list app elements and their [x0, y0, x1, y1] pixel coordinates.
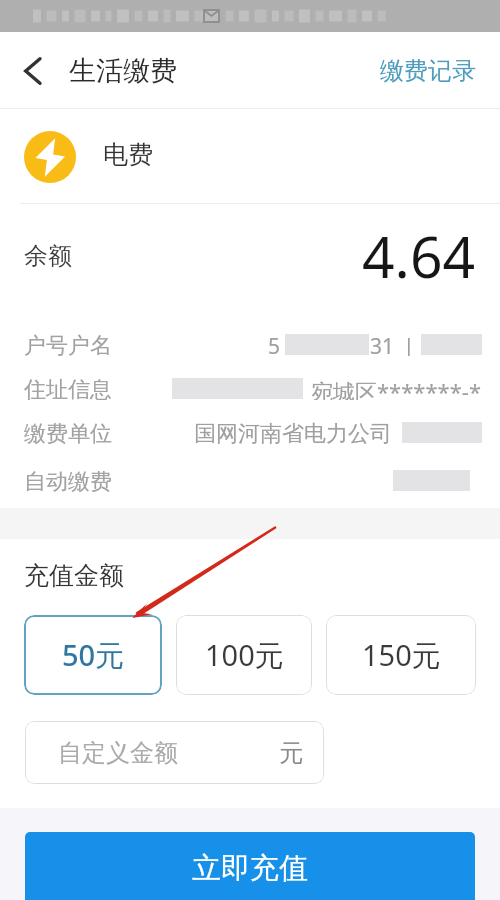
button[interactable]: 100元	[176, 615, 312, 695]
staticText: 生活缴费	[69, 54, 177, 88]
staticText: 立即充值	[192, 850, 308, 887]
staticText: |	[403, 332, 415, 356]
staticText: 4.64	[362, 217, 476, 295]
button[interactable]: 150元	[326, 615, 476, 695]
staticText: 100元	[205, 635, 284, 675]
staticText: 元	[279, 738, 303, 768]
staticText: 宛城区*******-*	[311, 376, 482, 400]
staticText: 自定义金额	[58, 738, 178, 768]
button[interactable]: 立即充值	[25, 832, 475, 900]
staticText: 缴费记录	[380, 56, 476, 86]
staticText: 自动缴费	[24, 468, 112, 492]
button[interactable]: 自定义金额	[25, 721, 324, 784]
button[interactable]: Back	[0, 32, 64, 109]
staticText: 31	[370, 332, 395, 356]
staticText: 5	[268, 332, 281, 356]
staticText: 国网河南省电力公司	[194, 420, 392, 444]
staticText: 充值金额	[24, 560, 124, 591]
button[interactable]: 缴费记录	[380, 56, 476, 86]
staticText: 150元	[362, 635, 441, 675]
staticText: 电费	[103, 139, 153, 170]
staticText: 余额	[24, 241, 72, 271]
staticText: 住址信息	[24, 376, 112, 400]
staticText: 缴费单位	[24, 420, 112, 444]
staticText: 50元	[62, 635, 125, 675]
button[interactable]: 50元	[24, 615, 162, 695]
staticText: 户号户名	[24, 332, 112, 356]
